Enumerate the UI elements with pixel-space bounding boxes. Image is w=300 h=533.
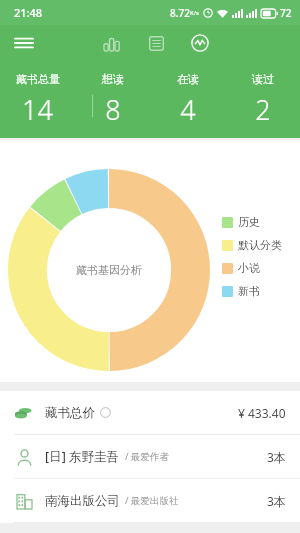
button[interactable]: List <box>140 27 172 59</box>
staticText: 在读 <box>177 72 199 86</box>
staticText: 14 <box>22 91 53 128</box>
button[interactable]: 历史 <box>222 215 260 229</box>
staticText: 想读 <box>102 72 124 86</box>
button[interactable]: Menu <box>8 27 40 59</box>
button[interactable]: 新书 <box>222 284 260 298</box>
staticText: 3本 <box>267 449 286 465</box>
button[interactable]: 在读 <box>150 61 225 138</box>
staticText: 3本 <box>267 493 286 509</box>
staticText: 藏书总量 <box>16 72 60 86</box>
staticText: 历史 <box>238 215 260 229</box>
button[interactable]: 想读 <box>75 61 150 138</box>
staticText: 默认分类 <box>238 238 282 252</box>
staticText: 2 <box>255 91 271 128</box>
staticText: 读过 <box>252 72 274 86</box>
staticText: 新书 <box>238 284 260 298</box>
staticText: K/s <box>190 9 199 17</box>
button[interactable]: Chart <box>96 27 128 59</box>
button[interactable]: 藏书总价 <box>0 391 300 434</box>
staticText: / 最爱出版社 <box>125 494 179 507</box>
button[interactable]: Analysis <box>184 27 216 59</box>
staticText: [日] 东野圭吾 <box>45 448 120 465</box>
staticText: / 最爱作者 <box>125 450 170 463</box>
button[interactable]: [日] 东野圭吾 <box>0 435 300 478</box>
button[interactable]: 小说 <box>222 261 260 275</box>
staticText: 小说 <box>238 261 260 275</box>
button[interactable]: 藏书总量 <box>0 61 75 138</box>
staticText: 72 <box>280 6 292 20</box>
button[interactable]: 南海出版公司 <box>0 479 300 522</box>
staticText: ¥ 433.40 <box>238 405 286 421</box>
staticText: 8 <box>105 91 121 128</box>
staticText: 4 <box>180 91 196 128</box>
staticText: 21:48 <box>14 5 43 20</box>
staticText: 南海出版公司 <box>45 493 120 509</box>
button[interactable]: 读过 <box>225 61 300 138</box>
button[interactable]: 默认分类 <box>222 238 282 252</box>
staticText: 藏书总价 <box>45 405 95 421</box>
staticText: 8.72 <box>170 6 190 20</box>
staticText: 藏书基因分析 <box>76 263 142 277</box>
